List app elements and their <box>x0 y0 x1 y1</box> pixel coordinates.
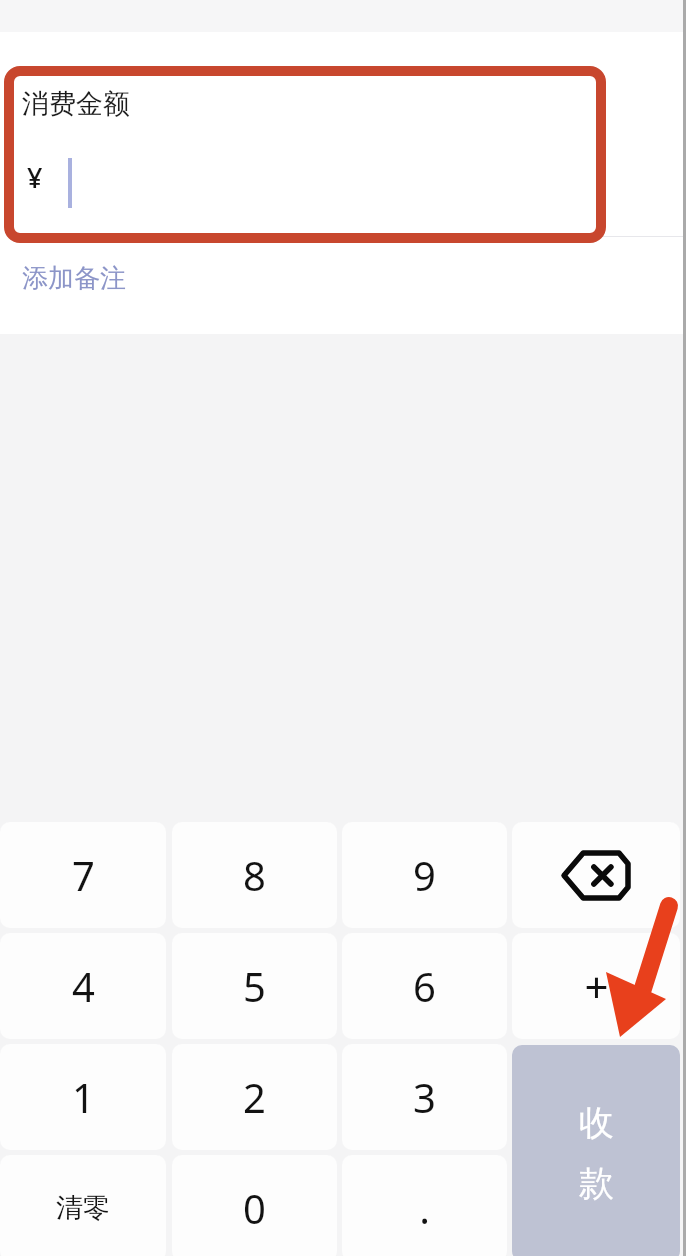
button[interactable]: 消费金额 <box>0 67 686 242</box>
button[interactable]: 2 <box>172 1044 337 1150</box>
button[interactable]: 1 <box>0 1044 166 1150</box>
staticText: 收 <box>579 1101 614 1145</box>
button[interactable]: 4 <box>0 933 166 1039</box>
button[interactable]: 3 <box>342 1044 507 1150</box>
staticText: 5 <box>243 959 266 1013</box>
button[interactable]: 0 <box>172 1155 337 1256</box>
staticText: 6 <box>413 959 436 1013</box>
button[interactable]: 添加备注 <box>0 256 148 301</box>
button[interactable]: 收 <box>512 1045 680 1256</box>
staticText: 3 <box>413 1070 436 1124</box>
staticText: 消费金额 <box>22 87 130 121</box>
staticText: 0 <box>243 1181 266 1235</box>
button[interactable]: 5 <box>172 933 337 1039</box>
staticText: + <box>584 958 609 1015</box>
button[interactable]: 6 <box>342 933 507 1039</box>
button[interactable]: Delete <box>512 822 680 928</box>
staticText: 8 <box>243 848 266 902</box>
staticText: 7 <box>72 848 95 902</box>
staticText: 9 <box>413 848 436 902</box>
staticText: 2 <box>243 1070 266 1124</box>
button[interactable]: 7 <box>0 822 166 928</box>
staticText: . <box>419 1181 430 1235</box>
button[interactable]: 清零 <box>0 1155 166 1256</box>
button[interactable]: + <box>512 933 680 1039</box>
staticText: 添加备注 <box>22 262 126 295</box>
button[interactable]: . <box>342 1155 507 1256</box>
staticText: 清零 <box>56 1191 110 1225</box>
staticText: 1 <box>72 1070 95 1124</box>
button[interactable]: 8 <box>172 822 337 928</box>
staticText: ¥ <box>27 159 43 196</box>
staticText: 4 <box>72 959 95 1013</box>
button[interactable]: 9 <box>342 822 507 928</box>
staticText: 款 <box>579 1161 614 1205</box>
